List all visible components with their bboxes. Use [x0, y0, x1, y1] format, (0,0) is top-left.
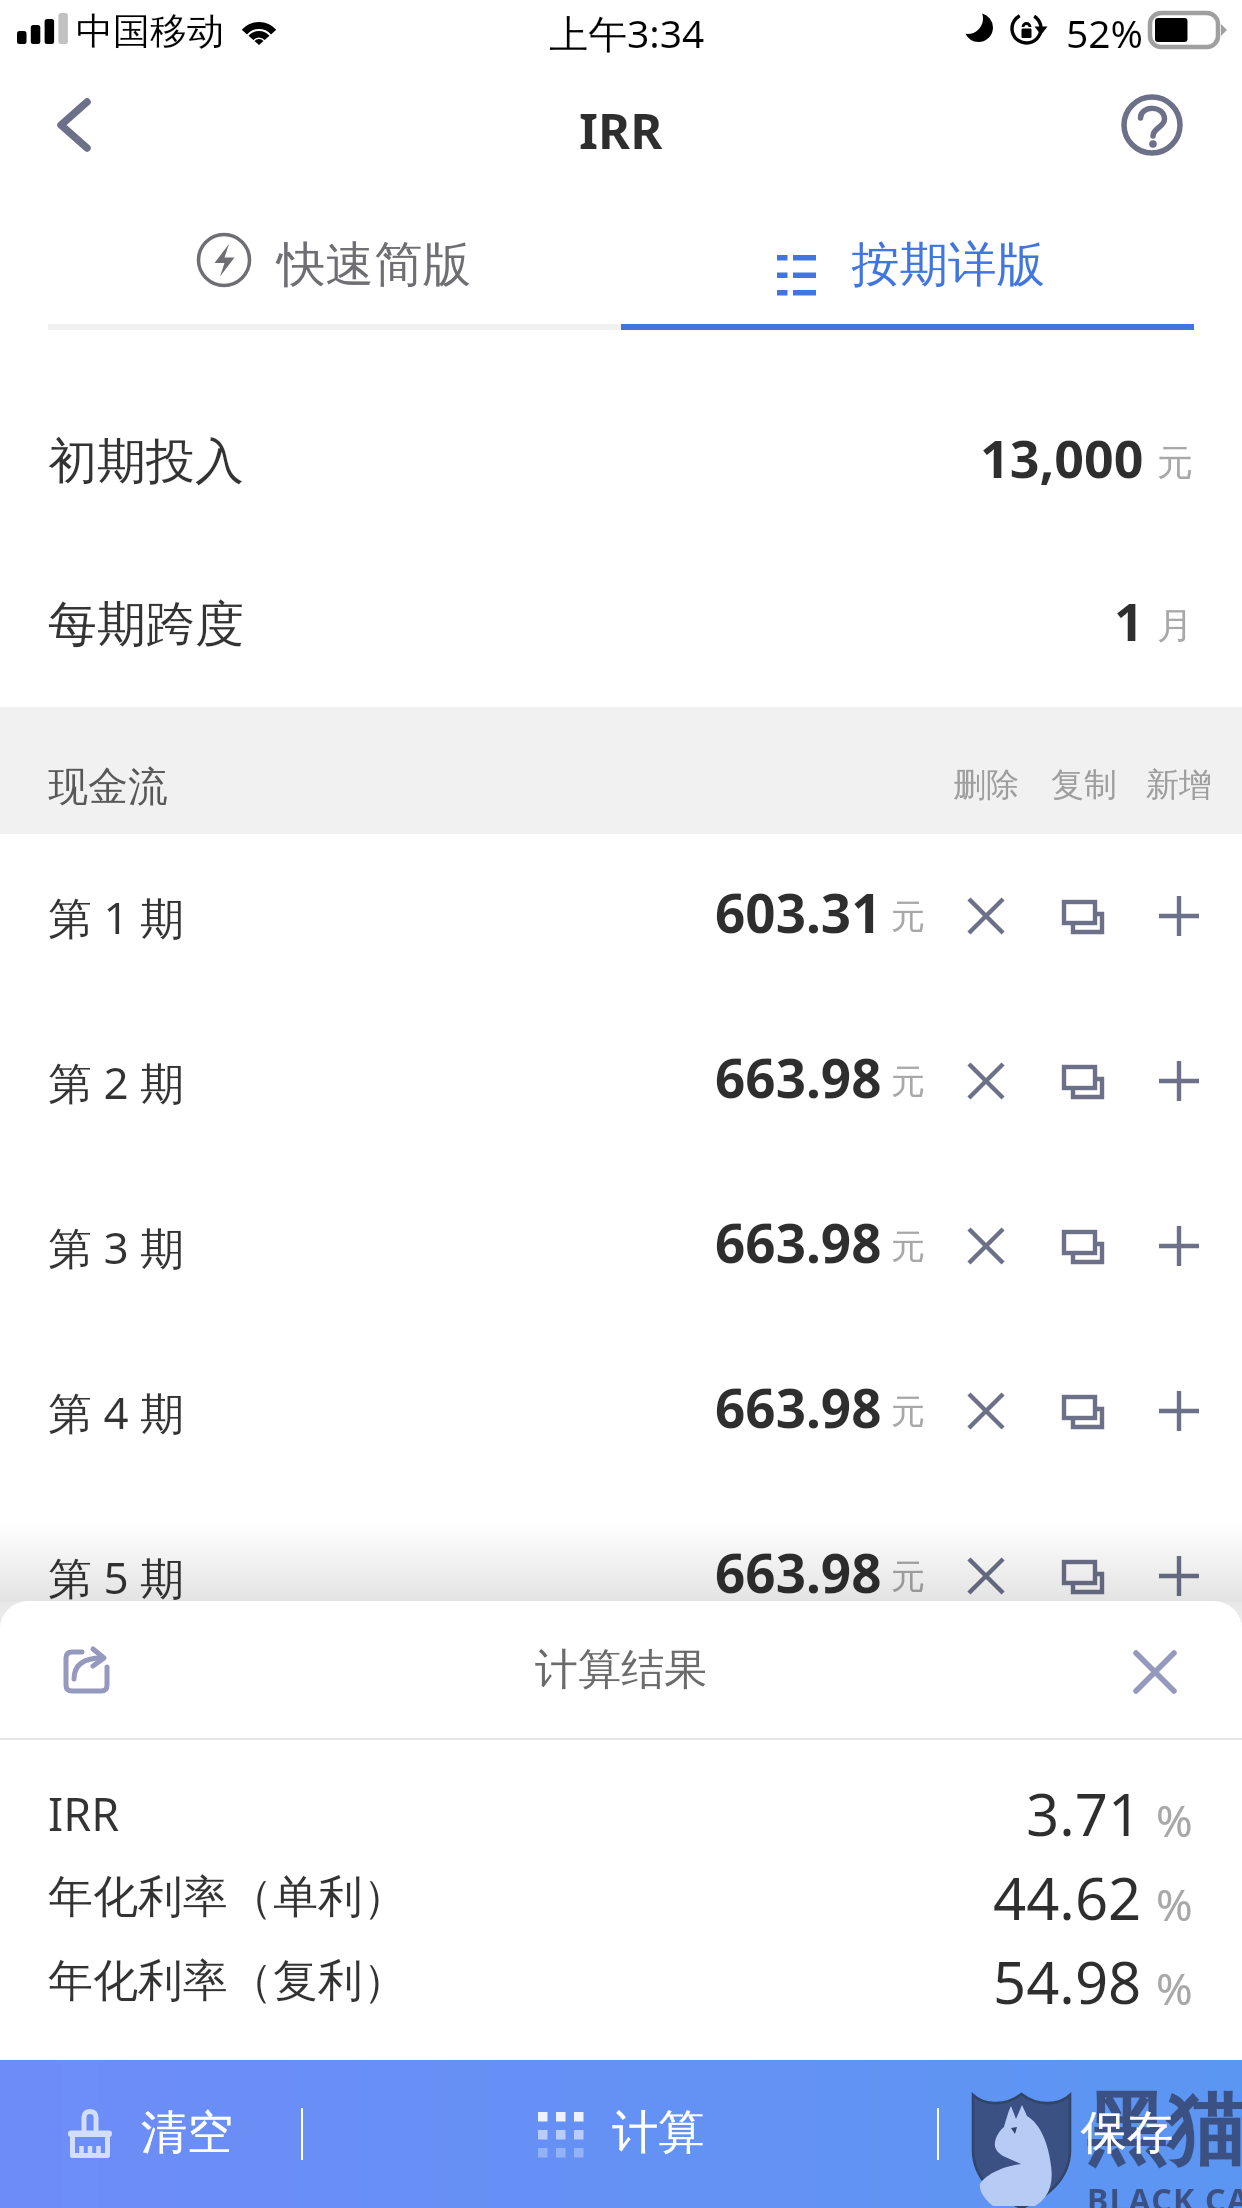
- staticText: 52%: [1066, 6, 1144, 59]
- button[interactable]: Help: [1102, 75, 1202, 175]
- staticText: 663.98: [715, 1206, 882, 1278]
- staticText: IRR: [579, 97, 663, 164]
- staticText: 年化利率（单利）: [48, 1869, 408, 1926]
- button[interactable]: Add: [1137, 1534, 1221, 1618]
- staticText: 第 3 期: [48, 1217, 185, 1277]
- staticText: 663.98: [715, 1041, 882, 1113]
- button[interactable]: Share: [44, 1630, 128, 1714]
- staticText: 新增: [1146, 764, 1212, 806]
- button[interactable]: 快速简版: [48, 210, 621, 324]
- button[interactable]: Close: [1113, 1630, 1197, 1714]
- staticText: 计算: [612, 2104, 704, 2162]
- button[interactable]: Copy: [1042, 876, 1126, 960]
- staticText: %: [1156, 1874, 1193, 1934]
- button[interactable]: 初期投入: [0, 380, 1242, 543]
- staticText: 第 1 期: [48, 887, 185, 947]
- staticText: 复制: [1051, 764, 1117, 806]
- staticText: IRR: [48, 1783, 120, 1844]
- staticText: 年化利率（复利）: [48, 1953, 408, 2010]
- button[interactable]: Add: [1137, 1039, 1221, 1123]
- staticText: 黑猫: [1086, 2080, 1242, 2181]
- staticText: %: [1156, 1958, 1193, 2018]
- staticText: 603.31: [715, 876, 882, 948]
- staticText: 元: [891, 895, 925, 938]
- staticText: 现金流: [48, 761, 168, 811]
- button[interactable]: 黑猫: [980, 2060, 1242, 2208]
- button[interactable]: 计算: [480, 2060, 780, 2208]
- button[interactable]: Copy: [1042, 1041, 1126, 1125]
- button[interactable]: 清空: [40, 2060, 290, 2208]
- button[interactable]: Delete: [944, 1039, 1028, 1123]
- button[interactable]: Copy: [1042, 1206, 1126, 1290]
- staticText: 54.98: [993, 1942, 1142, 2021]
- staticText: 计算结果: [535, 1643, 707, 1697]
- staticText: 上午3:34: [549, 6, 705, 59]
- staticText: 第 2 期: [48, 1052, 185, 1112]
- button[interactable]: Copy: [1042, 1536, 1126, 1620]
- staticText: 元: [891, 1555, 925, 1598]
- button[interactable]: 复制: [1035, 745, 1132, 825]
- button[interactable]: 每期跨度: [0, 543, 1242, 706]
- staticText: 第 4 期: [48, 1382, 185, 1442]
- staticText: 元: [891, 1390, 925, 1433]
- button[interactable]: Back: [24, 75, 124, 175]
- button[interactable]: 按期详版: [621, 210, 1194, 324]
- button[interactable]: Delete: [944, 1369, 1028, 1453]
- staticText: 663.98: [715, 1536, 882, 1608]
- staticText: 每期跨度: [48, 594, 244, 656]
- staticText: 清空: [141, 2104, 233, 2162]
- button[interactable]: 删除: [937, 745, 1034, 825]
- button[interactable]: Add: [1137, 1369, 1221, 1453]
- staticText: 月: [1157, 603, 1193, 648]
- staticText: 删除: [953, 764, 1019, 806]
- staticText: 保存: [1081, 2104, 1173, 2162]
- staticText: 44.62: [993, 1858, 1142, 1937]
- staticText: 3.71: [1026, 1774, 1142, 1853]
- staticText: %: [1156, 1790, 1193, 1850]
- button[interactable]: Delete: [944, 1534, 1028, 1618]
- button[interactable]: Copy: [1042, 1371, 1126, 1455]
- staticText: 初期投入: [48, 431, 244, 493]
- staticText: 按期详版: [851, 234, 1045, 295]
- button[interactable]: 新增: [1130, 745, 1227, 825]
- button[interactable]: Delete: [944, 874, 1028, 958]
- staticText: 元: [1157, 440, 1193, 485]
- button[interactable]: Add: [1137, 1204, 1221, 1288]
- staticText: 元: [891, 1225, 925, 1268]
- staticText: 663.98: [715, 1371, 882, 1443]
- staticText: 快速简版: [277, 234, 471, 295]
- staticText: 中国移动: [76, 8, 224, 55]
- button[interactable]: Add: [1137, 874, 1221, 958]
- staticText: 第 5 期: [48, 1547, 185, 1607]
- staticText: 元: [891, 1060, 925, 1103]
- staticText: BLACK CAT: [1087, 2178, 1242, 2208]
- staticText: 1: [1114, 585, 1144, 656]
- button[interactable]: Delete: [944, 1204, 1028, 1288]
- staticText: 13,000: [980, 422, 1144, 493]
